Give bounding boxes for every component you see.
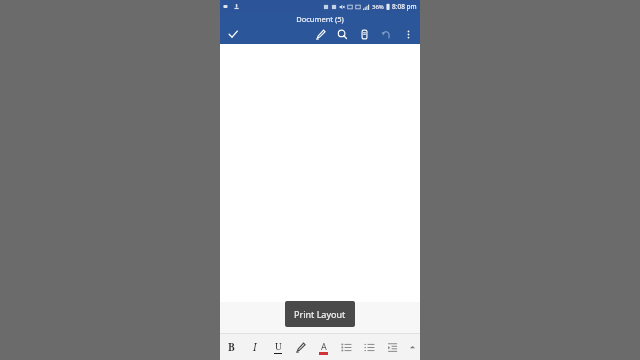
button[interactable]: Done (220, 24, 246, 44)
button[interactable]: Mobile view (353, 24, 375, 44)
staticText: U (275, 340, 282, 353)
staticText: B (228, 340, 235, 354)
button[interactable]: Font color (312, 334, 335, 360)
staticText: I (253, 340, 257, 354)
button[interactable]: Bulleted list (335, 334, 358, 360)
button[interactable]: Collapse toolbar (404, 334, 420, 360)
button[interactable]: More options (397, 24, 419, 44)
button[interactable]: Italic (243, 334, 266, 360)
button[interactable]: Increase indent (381, 334, 404, 360)
button[interactable]: Numbered list (358, 334, 381, 360)
button[interactable]: Undo (375, 24, 397, 44)
staticText: 36% (372, 3, 384, 11)
button[interactable]: Highlight (289, 334, 312, 360)
staticText: Print Layout (294, 308, 346, 320)
button[interactable]: Bold (220, 334, 243, 360)
staticText: 8:08 pm (392, 2, 417, 11)
staticText: A (321, 340, 327, 352)
staticText: Document (5) (296, 14, 344, 24)
button[interactable]: Underline (266, 334, 289, 360)
button[interactable]: Search (331, 24, 353, 44)
button[interactable]: Ink (309, 24, 331, 44)
